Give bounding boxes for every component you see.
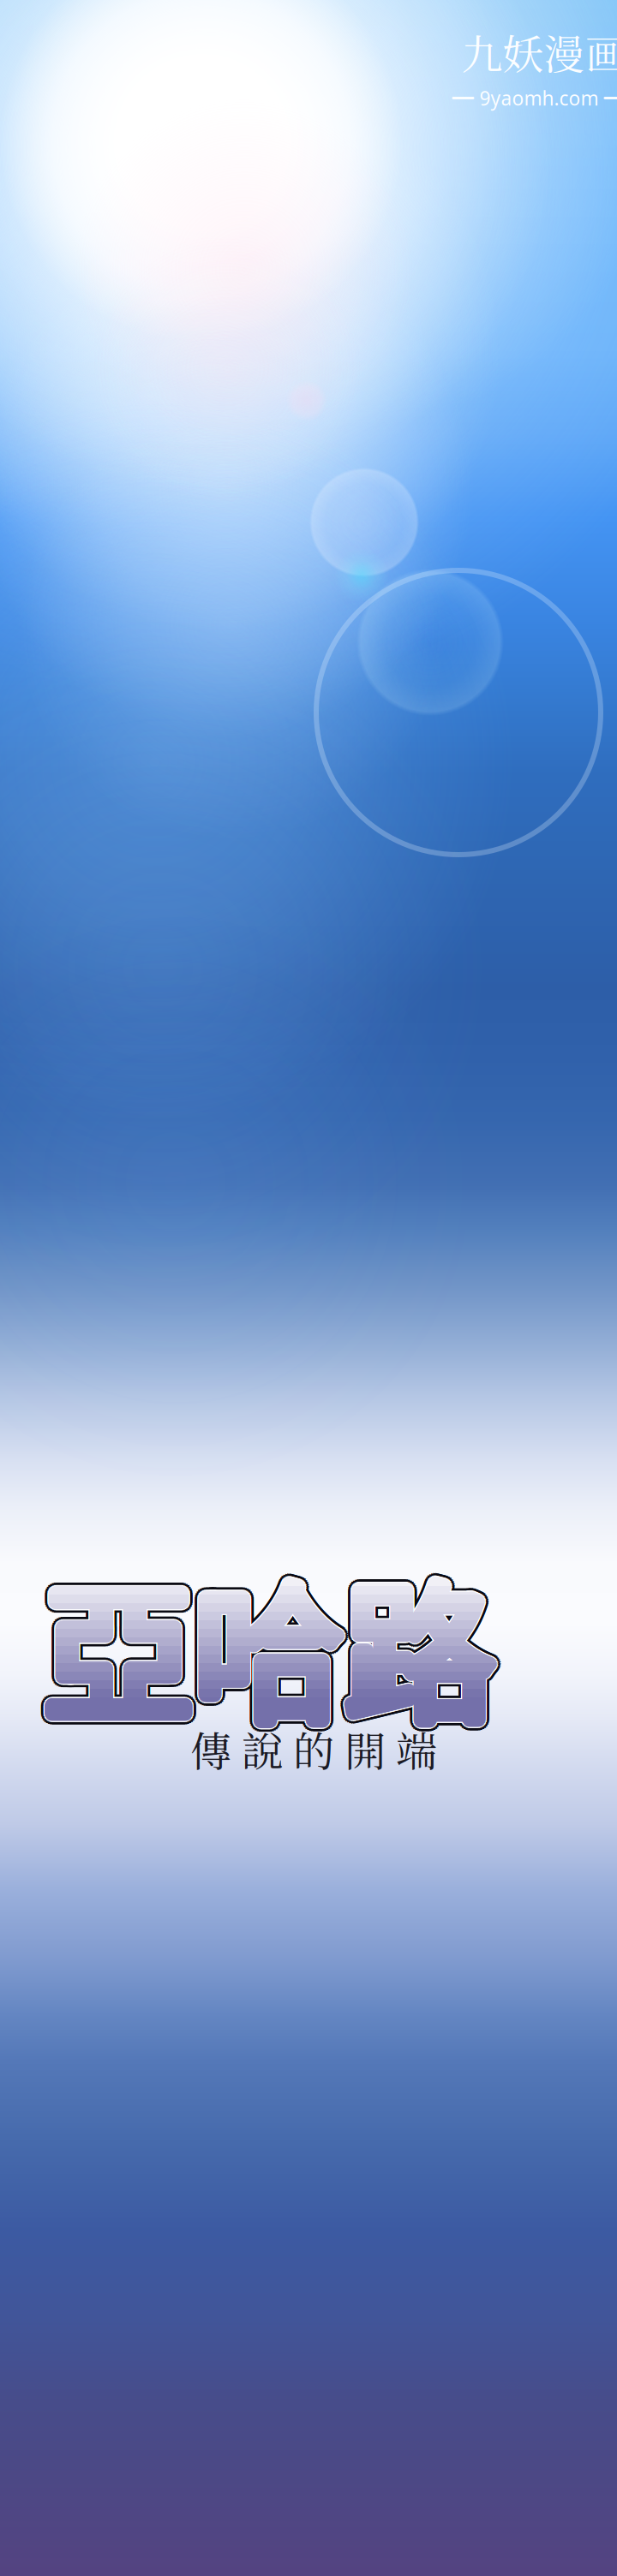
staticText: 亞哈路 — [49, 1536, 501, 1754]
staticText: 亞哈路 — [37, 1533, 489, 1752]
staticText: 亞哈路 — [37, 1536, 489, 1754]
staticText: 亞哈路 — [41, 1529, 493, 1747]
staticText: 亞哈路 — [52, 1531, 504, 1749]
staticText: 亞哈路 — [44, 1541, 496, 1759]
staticText: 亞哈路 — [47, 1539, 499, 1757]
staticText: 亞哈路 — [49, 1533, 501, 1752]
staticText: 亞哈路 — [39, 1530, 491, 1748]
staticText: 亞哈路 — [49, 1537, 501, 1755]
staticText: 亞哈路 — [40, 1529, 492, 1748]
staticText: 亞哈路 — [46, 1544, 498, 1762]
staticText: 亞哈路 — [42, 1541, 495, 1759]
staticText: 亞哈路 — [44, 1541, 496, 1759]
staticText: 亞哈路 — [47, 1541, 499, 1759]
staticText: 亞哈路 — [39, 1530, 491, 1748]
staticText: 亞哈路 — [45, 1540, 497, 1759]
staticText: 亞哈路 — [49, 1533, 501, 1752]
staticText: 亞哈路 — [49, 1535, 501, 1753]
staticText: 亞哈路 — [45, 1528, 498, 1746]
staticText: 亞哈路 — [49, 1532, 501, 1750]
staticText: 亞哈路 — [39, 1539, 491, 1757]
staticText: 亞哈路 — [49, 1533, 501, 1752]
staticText: 亞哈路 — [45, 1540, 497, 1759]
staticText: 亞哈路 — [38, 1531, 490, 1749]
staticText: 亞哈路 — [40, 1540, 492, 1758]
staticText: 亞哈路 — [47, 1530, 499, 1748]
staticText: 亞哈路 — [49, 1536, 501, 1754]
staticText: 亞哈路 — [48, 1538, 500, 1756]
staticText: 亞哈路 — [47, 1530, 499, 1748]
staticText: 亞哈路 — [45, 1529, 497, 1747]
staticText: 亞哈路 — [42, 1541, 495, 1759]
staticText: 亞哈路 — [46, 1529, 498, 1748]
staticText: 亞哈路 — [48, 1538, 500, 1756]
staticText: 亞哈路 — [49, 1532, 501, 1750]
staticText: 亞哈路 — [41, 1529, 493, 1747]
staticText: 亞哈路 — [48, 1538, 500, 1756]
staticText: 亞哈路 — [40, 1529, 492, 1748]
staticText: 亞哈路 — [37, 1537, 490, 1755]
staticText: 亞哈路 — [39, 1539, 491, 1757]
staticText: 亞哈路 — [37, 1535, 489, 1753]
staticText: 亞哈路 — [44, 1541, 496, 1759]
staticText: 亞哈路 — [38, 1538, 490, 1756]
staticText: 亞哈路 — [49, 1535, 501, 1753]
staticText: 亞哈路 — [45, 1540, 497, 1759]
staticText: 亞哈路 — [42, 1541, 495, 1759]
staticText: 亞哈路 — [47, 1530, 499, 1748]
staticText: 亞哈路 — [49, 1532, 501, 1750]
staticText: 亞哈路 — [40, 1540, 492, 1758]
staticText: 亞哈路 — [42, 1525, 494, 1743]
staticText: 亞哈路 — [46, 1540, 498, 1758]
staticText: 亞哈路 — [48, 1538, 500, 1756]
staticText: 亞哈路 — [42, 1528, 495, 1747]
staticText: 亞哈路 — [48, 1538, 500, 1756]
staticText: 亞哈路 — [48, 1540, 500, 1758]
staticText: 亞哈路 — [39, 1530, 491, 1748]
staticText: 亞哈路 — [38, 1531, 490, 1749]
staticText: 亞哈路 — [44, 1541, 496, 1759]
staticText: 亞哈路 — [39, 1530, 491, 1748]
staticText: 亞哈路 — [46, 1525, 498, 1744]
staticText: 亞哈路 — [38, 1538, 490, 1756]
staticText: 亞哈路 — [48, 1538, 500, 1756]
staticText: 亞哈路 — [37, 1532, 490, 1750]
staticText: 亞哈路 — [49, 1532, 501, 1750]
staticText: 亞哈路 — [49, 1539, 501, 1757]
staticText: 亞哈路 — [42, 1541, 495, 1759]
staticText: 亞哈路 — [47, 1530, 499, 1748]
staticText: 亞哈路 — [35, 1535, 488, 1753]
staticText: 亞哈路 — [49, 1536, 501, 1754]
staticText: 亞哈路 — [47, 1530, 499, 1748]
staticText: 亞哈路 — [49, 1537, 501, 1755]
staticText: 亞哈路 — [37, 1536, 489, 1754]
staticText: 亞哈路 — [37, 1536, 489, 1754]
staticText: 亞哈路 — [37, 1533, 489, 1752]
staticText: 亞哈路 — [40, 1529, 492, 1748]
staticText: 亞哈路 — [41, 1540, 493, 1759]
staticText: 亞哈路 — [42, 1528, 495, 1747]
staticText: 亞哈路 — [49, 1536, 501, 1754]
staticText: 亞哈路 — [37, 1536, 489, 1754]
button[interactable]: 九妖漫画 — [452, 22, 617, 111]
staticText: 亞哈路 — [44, 1528, 496, 1747]
staticText: 亞哈路 — [49, 1537, 501, 1755]
staticText: 亞哈路 — [49, 1532, 501, 1750]
staticText: 亞哈路 — [40, 1529, 492, 1748]
staticText: 亞哈路 — [48, 1531, 500, 1749]
staticText: 亞哈路 — [40, 1529, 492, 1748]
staticText: 亞哈路 — [38, 1538, 490, 1756]
staticText: 亞哈路 — [40, 1529, 492, 1748]
staticText: 亞哈路 — [42, 1528, 495, 1747]
staticText: 亞哈路 — [49, 1535, 501, 1753]
staticText: 亞哈路 — [44, 1541, 496, 1759]
staticText: 亞哈路 — [37, 1537, 490, 1755]
staticText: 亞哈路 — [49, 1535, 501, 1753]
staticText: 亞哈路 — [47, 1530, 499, 1748]
staticText: 亞哈路 — [49, 1533, 501, 1752]
staticText: 亞哈路 — [37, 1532, 490, 1750]
staticText: 亞哈路 — [40, 1529, 492, 1748]
staticText: 亞哈路 — [47, 1539, 499, 1757]
staticText: 亞哈路 — [49, 1533, 501, 1752]
staticText: 亞哈路 — [37, 1532, 490, 1750]
